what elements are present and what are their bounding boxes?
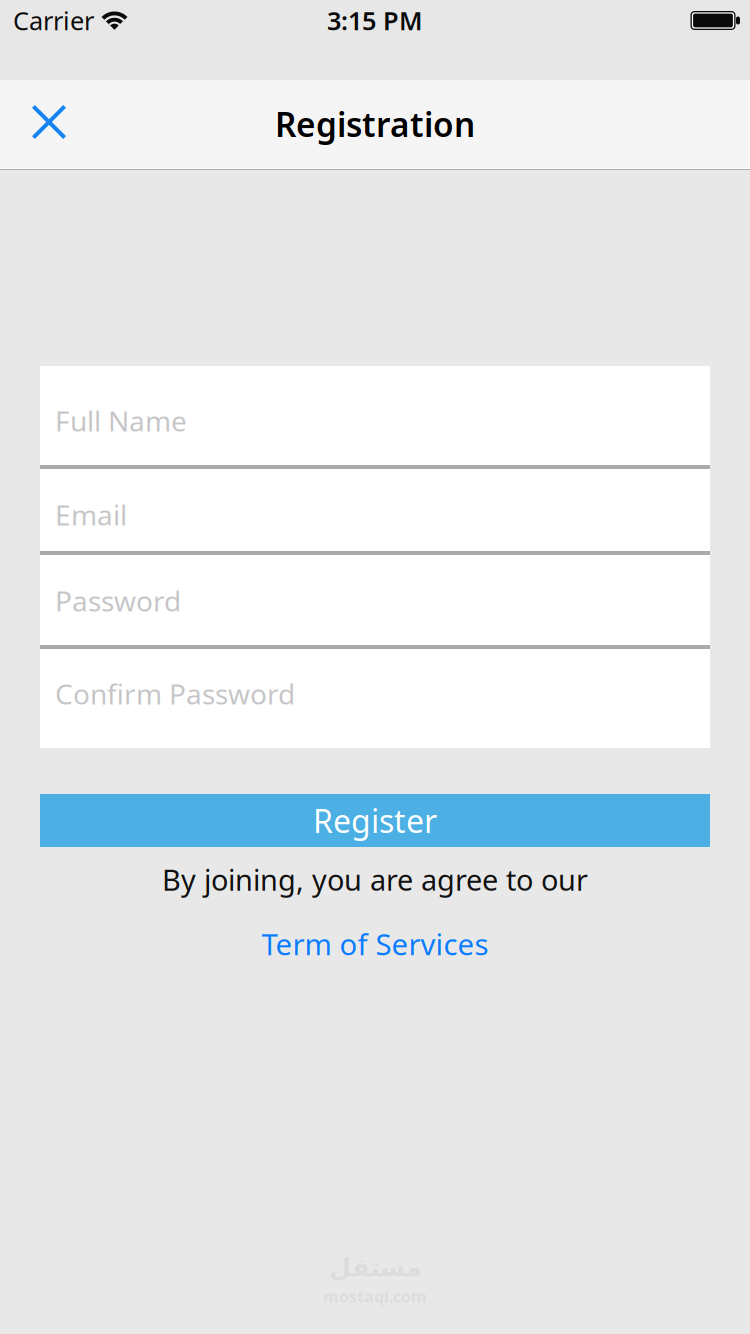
- staticText: By joining, you are agree to our: [162, 860, 588, 899]
- staticText: Email: [55, 496, 127, 533]
- staticText: Full Name: [55, 402, 187, 439]
- staticText: Register: [313, 799, 437, 842]
- button[interactable]: Close: [18, 93, 80, 155]
- button[interactable]: Register: [40, 794, 710, 847]
- staticText: mostaql.com: [323, 1286, 427, 1307]
- staticText: Password: [55, 582, 181, 619]
- staticText: Term of Services: [261, 924, 488, 963]
- staticText: Confirm Password: [55, 675, 295, 712]
- staticText: Registration: [275, 102, 475, 146]
- staticText: 3:15 PM: [327, 4, 423, 37]
- staticText: مستقل: [328, 1253, 421, 1282]
- button[interactable]: Term of Services: [261, 924, 488, 963]
- staticText: Carrier: [13, 4, 94, 37]
